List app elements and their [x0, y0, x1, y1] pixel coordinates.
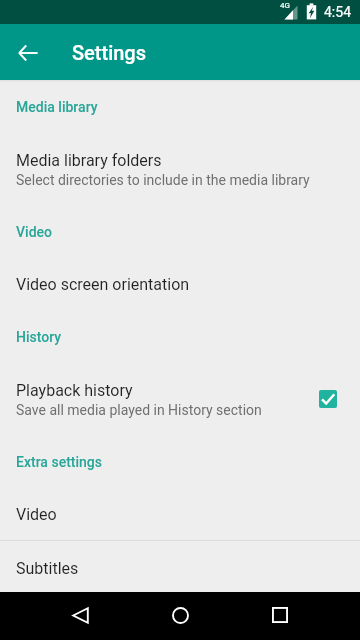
button[interactable]: Media library folders — [0, 133, 360, 205]
button[interactable]: Playback history — [0, 363, 360, 435]
staticText: Video screen orientation — [16, 275, 190, 294]
staticText: 4:54 — [324, 4, 351, 20]
button[interactable]: Back — [56, 591, 104, 639]
staticText: 4G — [280, 1, 290, 10]
staticText: Settings — [72, 41, 147, 64]
staticText: Video — [16, 224, 53, 240]
button[interactable]: Recent apps — [256, 591, 304, 639]
button[interactable]: Home — [156, 591, 204, 639]
button[interactable]: Subtitles — [0, 541, 360, 592]
button[interactable]: Playback history enabled — [313, 384, 343, 414]
staticText: Playback history — [16, 381, 133, 400]
button[interactable]: Navigate up — [10, 35, 46, 71]
staticText: Media library folders — [16, 151, 162, 170]
staticText: Save all media played in History section — [16, 402, 262, 418]
staticText: Media library — [16, 99, 98, 115]
button[interactable]: Video — [0, 488, 360, 540]
staticText: Extra settings — [16, 454, 103, 470]
button[interactable]: Video screen orientation — [0, 258, 360, 310]
staticText: Video — [16, 505, 57, 524]
staticText: Select directories to include in the med… — [16, 172, 310, 188]
staticText: Subtitles — [16, 559, 79, 578]
staticText: History — [16, 329, 62, 345]
